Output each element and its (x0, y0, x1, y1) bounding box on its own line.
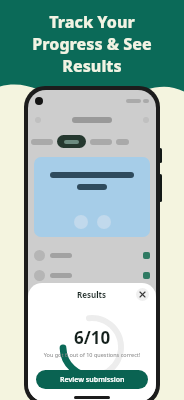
staticText: You got 6 out of 10 questions correct! (28, 351, 156, 358)
button[interactable]: Review submission (36, 370, 148, 389)
staticText: Track Your (49, 11, 135, 33)
staticText: Progress & See (32, 33, 152, 55)
button[interactable]: Close (136, 288, 149, 301)
staticText: Results (62, 55, 122, 77)
staticText: 6/10 (74, 326, 111, 349)
staticText: Review submission (60, 375, 125, 385)
staticText: Results (77, 289, 107, 300)
